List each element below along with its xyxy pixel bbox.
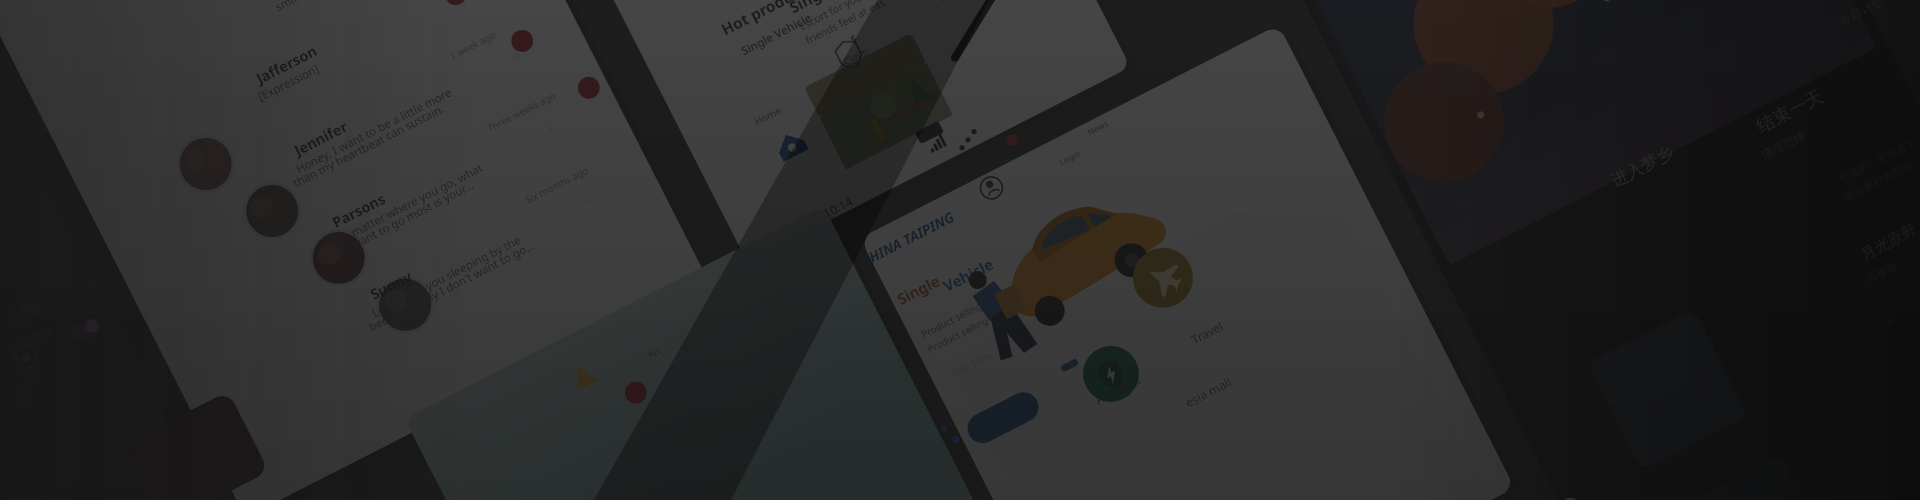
button[interactable]: App showcase banner — [0, 0, 1920, 500]
